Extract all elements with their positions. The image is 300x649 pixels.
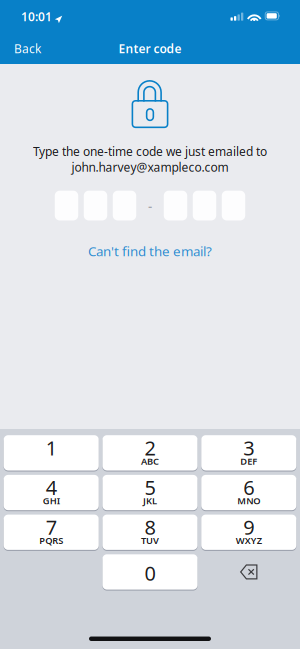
staticText: GHI <box>43 495 60 507</box>
staticText: 4 <box>46 474 57 501</box>
button[interactable]: 9 <box>201 515 296 550</box>
staticText: WXYZ <box>236 534 262 547</box>
button[interactable]: 6 <box>201 475 296 510</box>
staticText: 0 <box>144 560 155 586</box>
button[interactable]: 0 <box>102 554 198 590</box>
staticText: 7 <box>46 514 57 540</box>
staticText: Back <box>14 40 41 56</box>
staticText: 10:01 <box>21 8 52 24</box>
staticText: 2 <box>144 434 155 461</box>
staticText: - <box>148 197 152 214</box>
button[interactable]: Can't find the email? <box>78 240 222 262</box>
staticText: TUV <box>141 534 159 547</box>
button[interactable]: 3 <box>201 435 296 470</box>
staticText: PQRS <box>39 534 63 547</box>
staticText: Enter code <box>118 40 181 56</box>
staticText: Can't find the email? <box>88 242 212 260</box>
staticText: JKL <box>143 495 157 507</box>
staticText: 3 <box>243 434 254 461</box>
staticText: DEF <box>240 455 257 467</box>
button[interactable]: 8 <box>102 515 198 550</box>
staticText: ABC <box>141 455 159 467</box>
staticText: 5 <box>144 474 155 501</box>
button[interactable]: 4 <box>4 475 99 510</box>
staticText: 9 <box>243 514 254 540</box>
button[interactable]: Back <box>0 31 53 66</box>
staticText: 8 <box>144 514 155 540</box>
staticText: john.harvey@xampleco.com <box>71 159 228 175</box>
button[interactable]: Delete <box>201 554 296 590</box>
button[interactable]: 1 <box>4 435 99 470</box>
staticText: Type the one-time code we just emailed t… <box>33 143 267 159</box>
button[interactable]: 7 <box>4 515 99 550</box>
staticText: MNO <box>237 495 260 507</box>
button[interactable]: 2 <box>102 435 198 470</box>
button[interactable]: 5 <box>102 475 198 510</box>
staticText: 6 <box>243 474 254 501</box>
staticText: 1 <box>46 434 57 461</box>
